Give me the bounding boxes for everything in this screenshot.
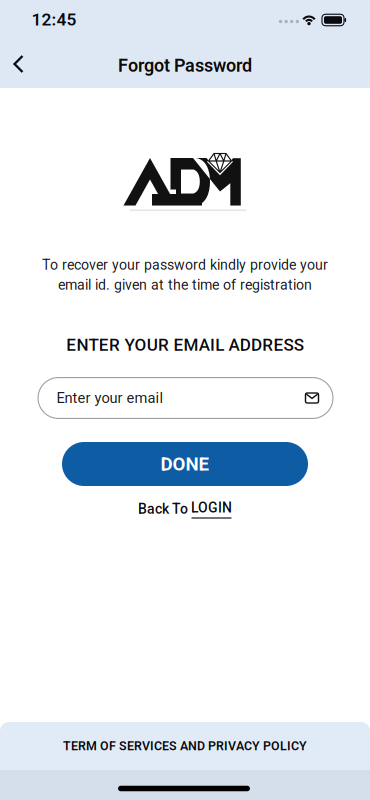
button[interactable]: Enter your email <box>37 377 333 419</box>
button[interactable]: DONE <box>62 442 308 486</box>
staticText: ENTER YOUR EMAIL ADDRESS <box>66 335 304 355</box>
staticText: LOGIN <box>191 499 232 516</box>
staticText: email id. given at the time of registrat… <box>58 277 312 293</box>
staticText: Enter your email <box>56 389 163 407</box>
button[interactable]: TERM OF SERVICES AND PRIVACY POLICY <box>0 722 370 770</box>
staticText: Back To <box>138 501 188 517</box>
staticText: TERM OF SERVICES AND PRIVACY POLICY <box>63 739 307 753</box>
button[interactable]: Back <box>0 42 44 86</box>
staticText: To recover your password kindly provide … <box>42 257 328 273</box>
staticText: Forgot Password <box>118 55 252 76</box>
staticText: 12:45 <box>31 9 76 30</box>
staticText: DONE <box>160 453 209 475</box>
button[interactable]: Back To <box>138 499 232 519</box>
